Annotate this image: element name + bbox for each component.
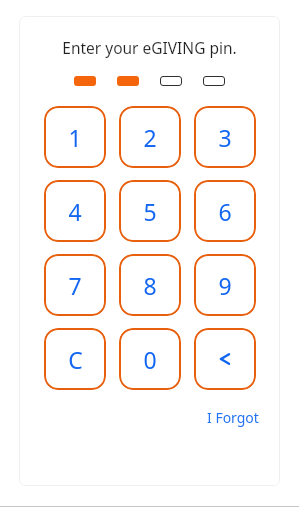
staticText: 6 [218,196,232,227]
staticText: 2 [143,122,157,153]
button[interactable]: 9 [194,254,256,316]
button[interactable]: 0 [119,328,181,390]
staticText: 3 [218,122,232,153]
button[interactable]: 3 [194,106,256,168]
button[interactable]: 7 [44,254,106,316]
staticText: 7 [68,270,82,301]
staticText: C [68,344,83,375]
staticText: Enter your eGIVING pin. [19,37,280,58]
button[interactable]: 6 [194,180,256,242]
button[interactable]: I Forgot [205,407,261,428]
button[interactable]: 5 [119,180,181,242]
staticText: 9 [218,270,232,301]
staticText: 4 [68,196,82,227]
button[interactable]: Backspace [194,328,256,390]
button[interactable]: 2 [119,106,181,168]
staticText: I Forgot [207,408,259,427]
staticText: 8 [143,270,157,301]
staticText: 0 [143,344,157,375]
staticText: 1 [68,122,82,153]
staticText: 5 [143,196,157,227]
button[interactable]: C [44,328,106,390]
button[interactable]: 1 [44,106,106,168]
button[interactable]: 8 [119,254,181,316]
button[interactable]: 4 [44,180,106,242]
